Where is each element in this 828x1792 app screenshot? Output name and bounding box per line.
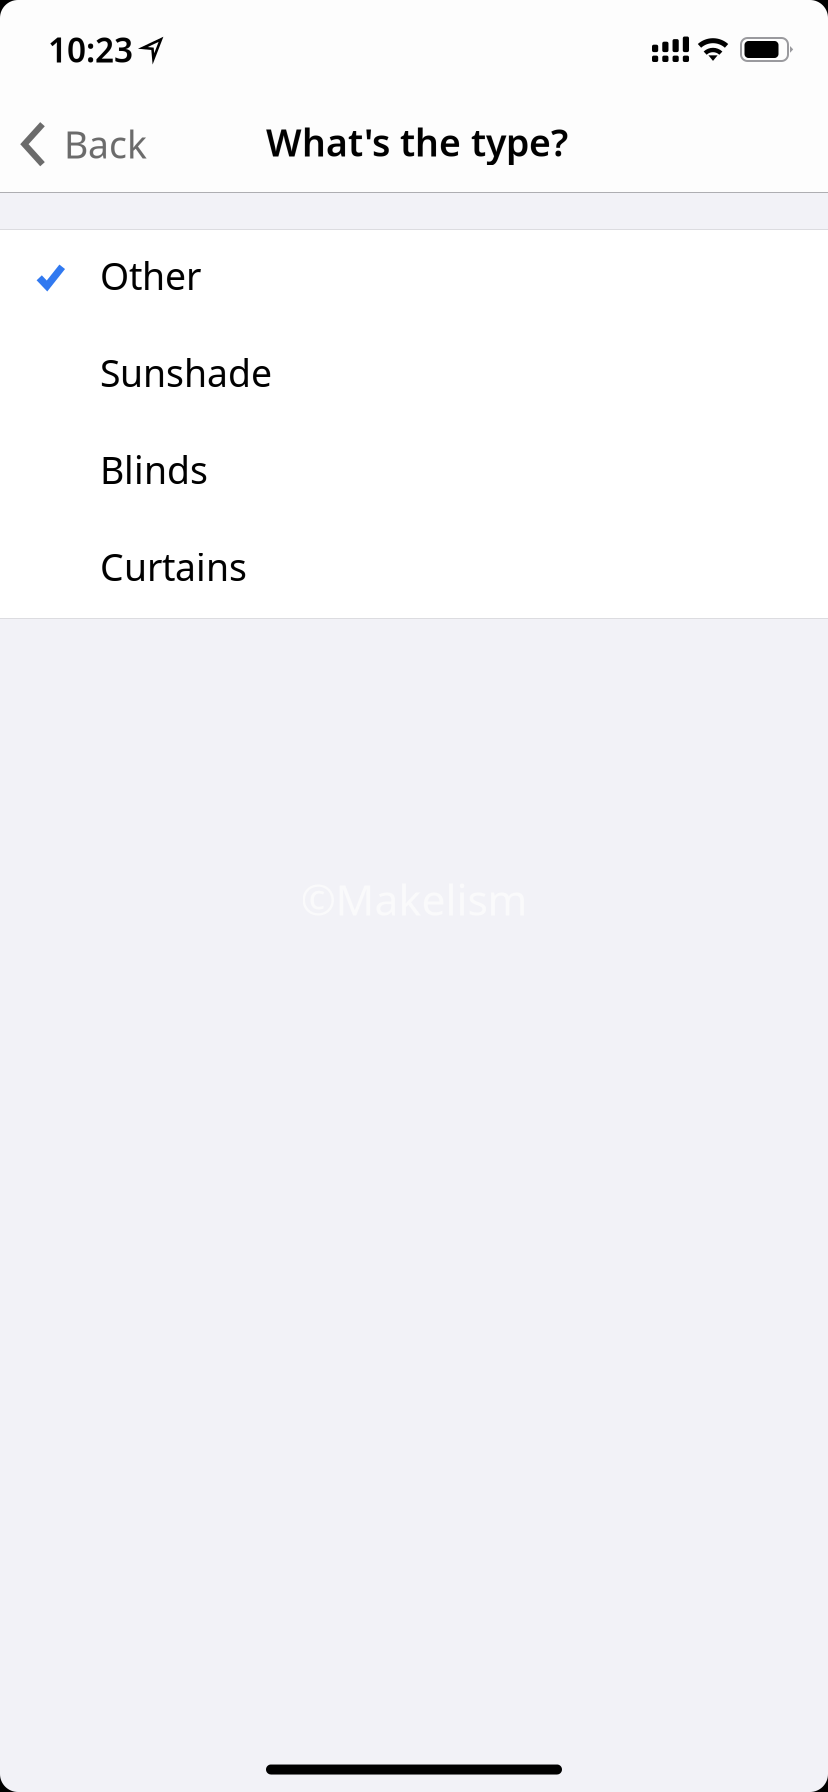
button[interactable]: Curtains <box>0 521 828 618</box>
button[interactable]: Sunshade <box>0 327 828 424</box>
staticText: Blinds <box>100 445 208 494</box>
staticText: Curtains <box>100 542 247 591</box>
staticText: Other <box>100 251 201 300</box>
button[interactable]: Back <box>0 88 169 192</box>
staticText: What's the type? <box>266 117 568 167</box>
button[interactable]: Other <box>0 230 828 327</box>
button[interactable]: Blinds <box>0 424 828 521</box>
staticText: Sunshade <box>100 348 272 397</box>
staticText: 10:23 <box>48 27 133 72</box>
staticText: Back <box>64 119 147 169</box>
